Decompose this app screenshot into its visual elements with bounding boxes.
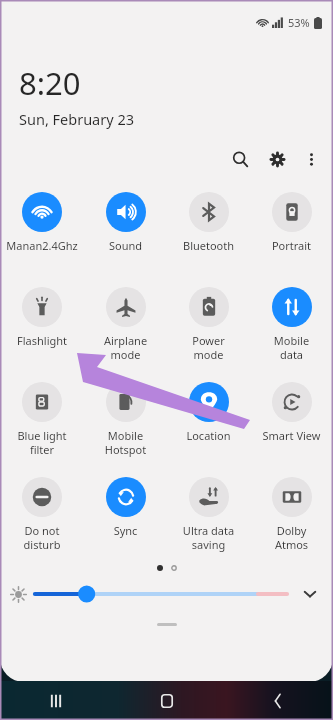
staticText: Sun, February 23 bbox=[19, 109, 134, 129]
button[interactable]: Search bbox=[226, 145, 254, 173]
button[interactable]: Recents bbox=[0, 681, 111, 720]
button[interactable]: Blue light filter bbox=[0, 373, 84, 468]
staticText: Flashlight bbox=[2, 333, 82, 348]
staticText: Mobile Hotspot bbox=[86, 428, 165, 457]
button[interactable]: Dolby Atmos bbox=[250, 468, 333, 563]
staticText: Mobile data bbox=[252, 333, 331, 362]
button[interactable]: Bluetooth bbox=[167, 183, 250, 278]
button[interactable]: Smart View bbox=[250, 373, 333, 468]
staticText: Power mode bbox=[169, 333, 248, 362]
button[interactable]: Sound bbox=[84, 183, 167, 278]
staticText: Sound bbox=[86, 238, 165, 253]
button[interactable]: Mobile Hotspot bbox=[84, 373, 167, 468]
staticText: Airplane mode bbox=[86, 333, 165, 362]
staticText: Dolby Atmos bbox=[252, 523, 331, 552]
staticText: Location bbox=[169, 428, 248, 443]
staticText: Do not disturb bbox=[2, 523, 82, 552]
button[interactable]: Back bbox=[222, 681, 333, 720]
button[interactable]: Portrait bbox=[250, 183, 333, 278]
staticText: 8:20 bbox=[19, 62, 81, 104]
button[interactable]: Ultra data saving bbox=[167, 468, 250, 563]
staticText: Blue light filter bbox=[2, 428, 82, 457]
button[interactable]: Airplane mode bbox=[84, 278, 167, 373]
button[interactable]: Power mode bbox=[167, 278, 250, 373]
button[interactable]: Flashlight bbox=[0, 278, 84, 373]
button[interactable]: Mobile data bbox=[250, 278, 333, 373]
staticText: Ultra data saving bbox=[169, 523, 248, 552]
staticText: Manan2.4Ghz bbox=[2, 238, 82, 253]
button[interactable]: Home bbox=[111, 681, 222, 720]
button[interactable]: Expand bbox=[297, 581, 323, 607]
staticText: Sync bbox=[86, 523, 165, 538]
button[interactable]: Manan2.4Ghz bbox=[0, 183, 84, 278]
button[interactable]: Location bbox=[167, 373, 250, 468]
button[interactable]: Settings bbox=[263, 145, 291, 173]
button[interactable]: Do not disturb bbox=[0, 468, 84, 563]
staticText: Smart View bbox=[252, 428, 331, 443]
button[interactable] bbox=[35, 581, 287, 607]
button[interactable]: More options bbox=[297, 145, 325, 173]
staticText: 53% bbox=[288, 15, 310, 30]
staticText: Bluetooth bbox=[169, 238, 248, 253]
staticText: Portrait bbox=[252, 238, 331, 253]
button[interactable]: Sync bbox=[84, 468, 167, 563]
